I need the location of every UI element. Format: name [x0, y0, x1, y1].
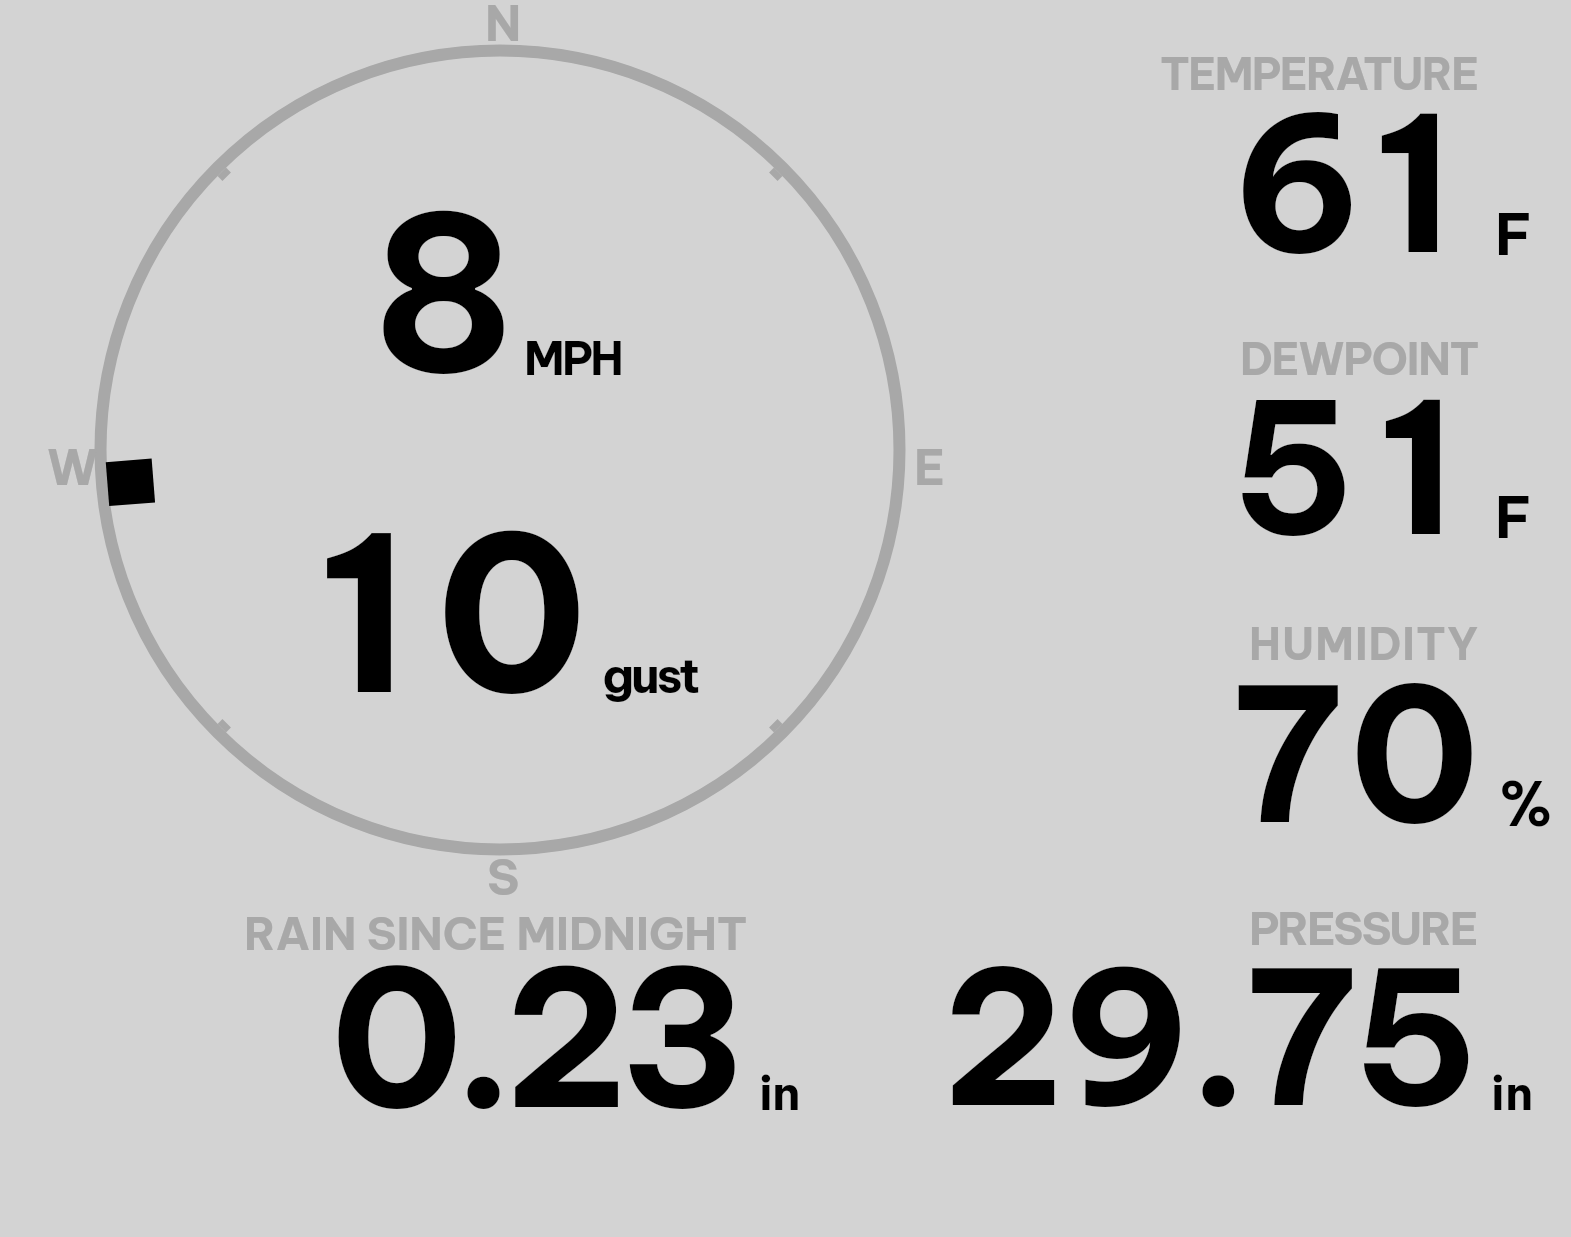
staticText: N [485, 0, 522, 53]
staticText: in [759, 1063, 801, 1122]
staticText: gust [602, 644, 698, 705]
staticText: 61 [1232, 66, 1467, 301]
staticText: 70 [1232, 638, 1491, 871]
staticText: 51 [1231, 352, 1480, 582]
staticText: 0.23 [331, 919, 736, 1157]
staticText: MPH [524, 329, 622, 387]
staticText: HUMIDITY [1249, 616, 1480, 671]
staticText: in [1491, 1064, 1534, 1122]
staticText: W [47, 436, 99, 497]
staticText: DEWPOINT [1240, 331, 1479, 386]
staticText: F [1495, 197, 1533, 270]
staticText: F [1495, 481, 1532, 553]
staticText: PRESSURE [1249, 900, 1477, 957]
staticText: % [1499, 764, 1553, 842]
staticText: S [487, 846, 520, 907]
staticText: RAIN SINCE MIDNIGHT [244, 905, 748, 962]
staticText: TEMPERATURE [1160, 46, 1478, 101]
staticText: 10 [318, 477, 613, 749]
staticText: 8 [372, 157, 516, 429]
staticText: 29.75 [942, 920, 1476, 1155]
staticText: E [914, 436, 946, 497]
button[interactable]: Weather dashboard [0, 0, 1571, 1237]
